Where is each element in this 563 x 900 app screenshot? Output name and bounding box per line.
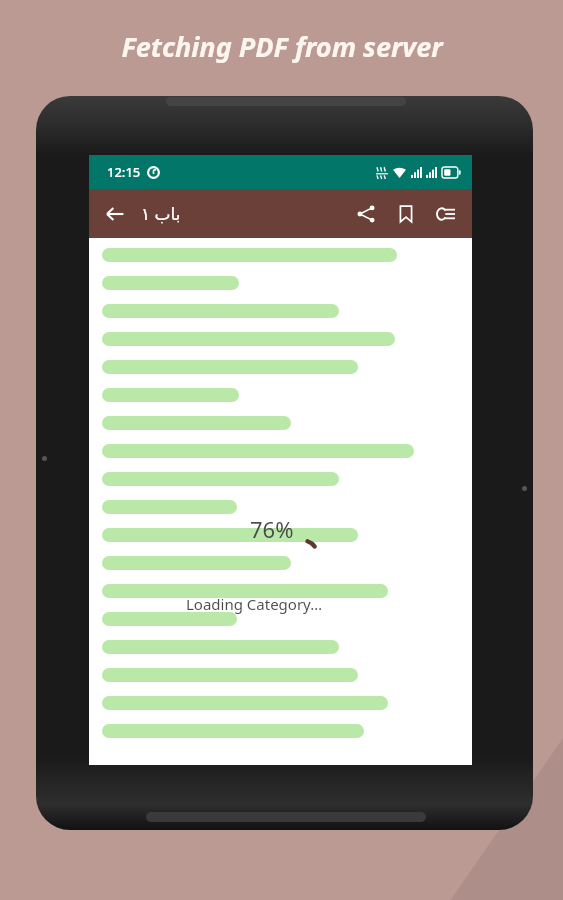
button[interactable]: Back xyxy=(95,194,135,234)
staticText: Fetching PDF from server xyxy=(121,28,443,65)
button[interactable]: Reading settings xyxy=(426,194,466,234)
button[interactable]: Bookmark xyxy=(386,194,426,234)
button[interactable]: Share xyxy=(346,194,386,234)
staticText: 12:15 xyxy=(107,163,141,181)
staticText: باب ۱ xyxy=(141,202,181,225)
staticText: 76% xyxy=(250,514,294,544)
staticText: Loading Category… xyxy=(186,594,323,614)
